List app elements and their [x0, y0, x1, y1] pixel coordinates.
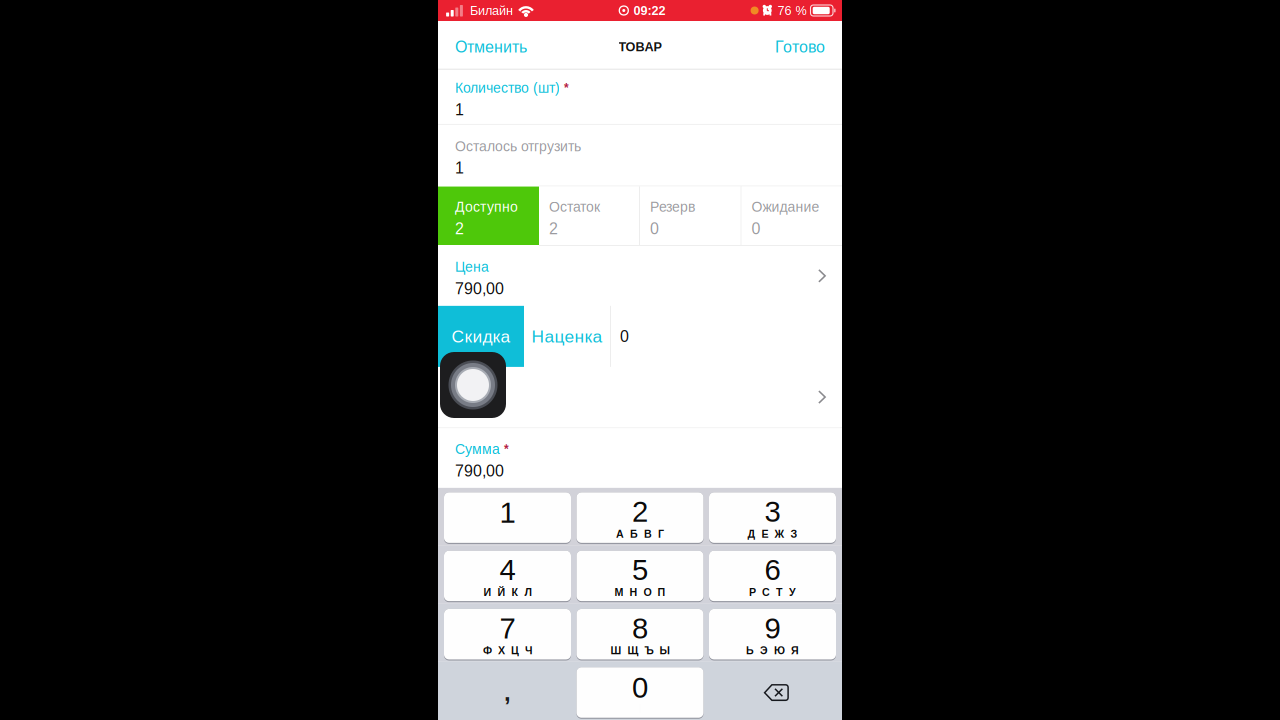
- button[interactable]: Отменить: [438, 21, 544, 69]
- button[interactable]: Наценка: [524, 306, 610, 367]
- staticText: Отменить: [455, 38, 527, 56]
- button[interactable]: Delete: [709, 667, 836, 718]
- button[interactable]: Цена: [438, 246, 842, 306]
- button[interactable]: 0: [576, 667, 703, 718]
- staticText: *: [564, 81, 569, 95]
- staticText: 2: [549, 220, 558, 238]
- staticText: 0: [752, 220, 761, 238]
- staticText: 1: [499, 496, 515, 529]
- staticText: 5: [632, 554, 648, 586]
- staticText: Количество (шт): [455, 80, 560, 96]
- staticText: Сумма: [455, 441, 500, 457]
- staticText: 0: [620, 327, 629, 345]
- button[interactable]: 5: [576, 551, 703, 601]
- staticText: 790,00: [455, 280, 504, 298]
- staticText: Осталось отгрузить: [455, 138, 581, 154]
- staticText: 8: [632, 612, 648, 645]
- staticText: Ш Щ Ъ Ы: [610, 645, 669, 656]
- staticText: 790,00: [455, 462, 504, 480]
- staticText: 7: [499, 612, 515, 645]
- staticText: 0: [632, 671, 648, 704]
- button[interactable]: Фото товара: [438, 367, 842, 427]
- staticText: ,: [504, 679, 511, 706]
- staticText: Ь Э Ю Я: [746, 645, 799, 656]
- staticText: Наценка: [531, 327, 602, 346]
- button[interactable]: Количество (шт): [438, 70, 842, 124]
- staticText: 1: [455, 159, 464, 177]
- staticText: М Н О П: [614, 586, 665, 598]
- button[interactable]: Готово: [758, 21, 842, 69]
- staticText: 2: [632, 495, 648, 528]
- staticText: Скидка: [451, 327, 510, 346]
- staticText: Готово: [775, 38, 825, 56]
- staticText: Ф Х Ц Ч: [483, 645, 532, 656]
- staticText: Остаток: [549, 199, 600, 215]
- button[interactable]: Comma: [444, 667, 571, 718]
- button[interactable]: 8: [576, 609, 703, 659]
- button[interactable]: 4: [444, 551, 571, 601]
- staticText: Доступно: [455, 199, 518, 215]
- staticText: 0: [650, 220, 659, 238]
- staticText: 1: [455, 101, 464, 119]
- staticText: Резерв: [650, 199, 695, 215]
- staticText: Цена: [455, 259, 489, 275]
- button[interactable]: 2: [576, 492, 703, 543]
- staticText: ТОВАР: [618, 40, 661, 54]
- staticText: И Й К Л: [483, 586, 531, 598]
- staticText: 6: [764, 554, 780, 586]
- staticText: 2: [455, 220, 464, 238]
- staticText: *: [504, 442, 509, 456]
- button[interactable]: 1: [444, 492, 571, 543]
- staticText: 09:22: [633, 3, 665, 18]
- button[interactable]: 7: [444, 609, 571, 659]
- staticText: Ожидание: [752, 199, 820, 215]
- staticText: Билайн: [470, 3, 513, 18]
- button[interactable]: Осталось отгрузить: [438, 125, 842, 186]
- staticText: 9: [764, 612, 780, 645]
- button[interactable]: 6: [709, 551, 836, 601]
- staticText: Д Е Ж З: [747, 528, 797, 540]
- staticText: 3: [764, 495, 780, 528]
- staticText: 76 %: [777, 3, 806, 18]
- staticText: Р С Т У: [749, 586, 796, 598]
- button[interactable]: Скидка: [438, 306, 524, 367]
- button[interactable]: Сумма: [438, 428, 842, 488]
- button[interactable]: 3: [709, 492, 836, 543]
- button[interactable]: 9: [709, 609, 836, 659]
- staticText: 4: [499, 554, 515, 586]
- staticText: А Б В Г: [616, 528, 664, 540]
